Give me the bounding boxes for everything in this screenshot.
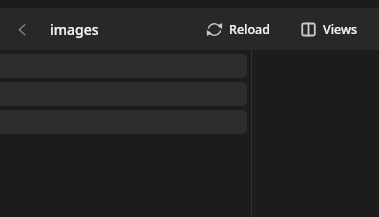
staticText: Views — [323, 21, 358, 38]
button[interactable]: Reload — [200, 8, 275, 50]
staticText: images — [50, 20, 99, 39]
button[interactable]: Views — [296, 8, 363, 50]
button[interactable]: Back — [0, 8, 43, 50]
staticText: Reload — [229, 21, 270, 38]
